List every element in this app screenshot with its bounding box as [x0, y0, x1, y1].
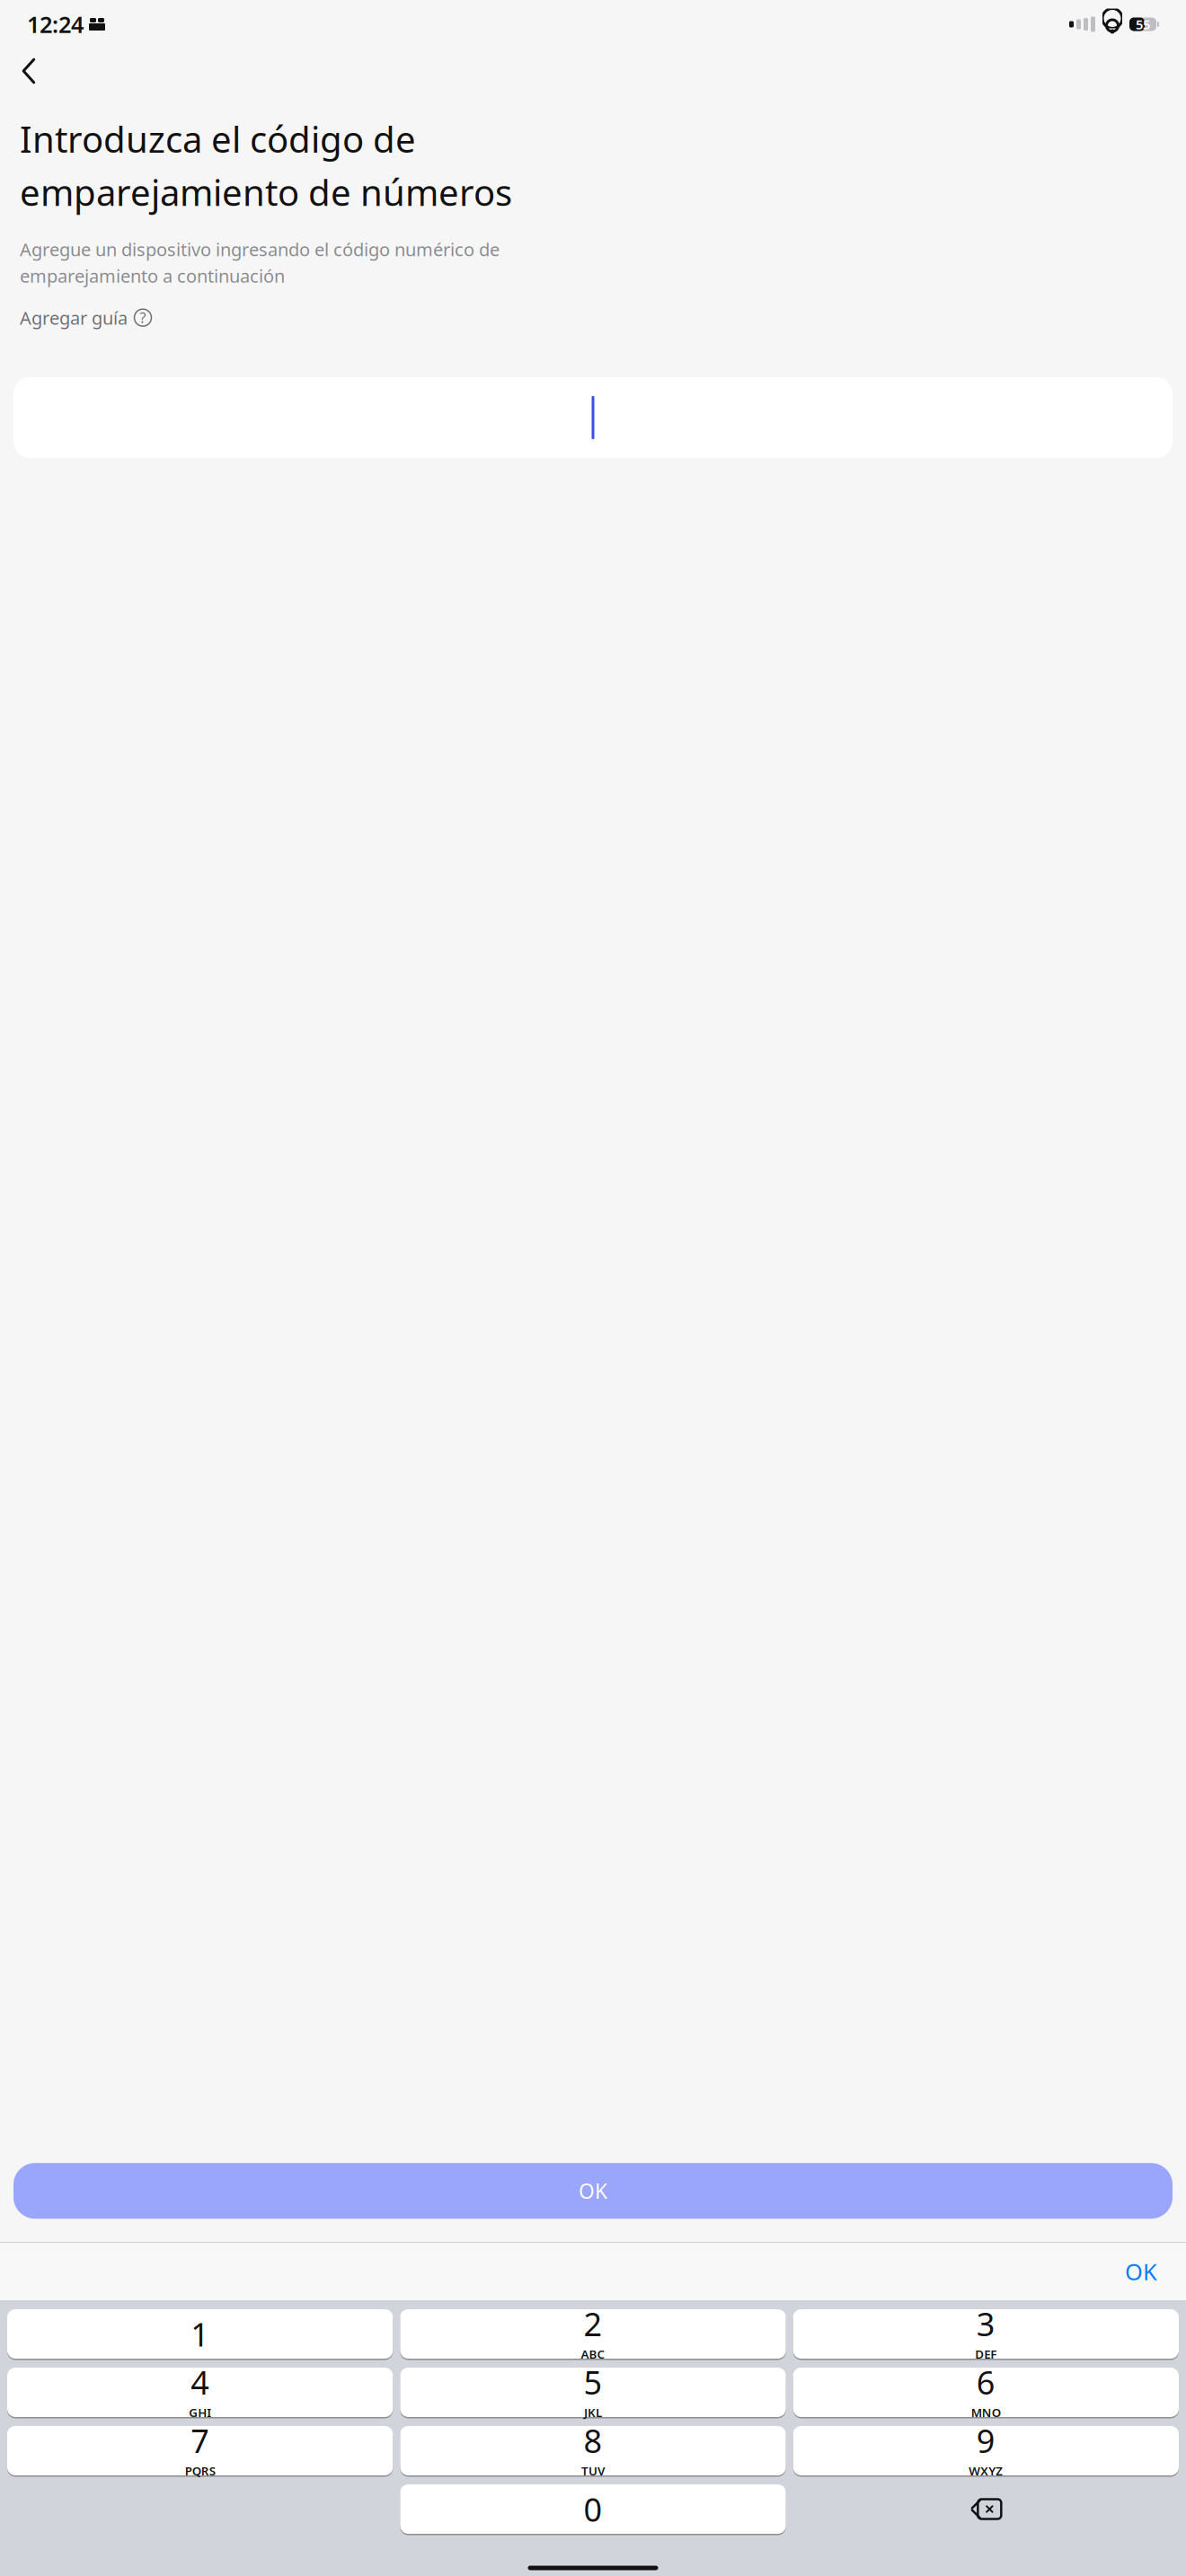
button[interactable]: 2 — [400, 2308, 786, 2360]
button[interactable]: Agregar guía — [20, 300, 152, 335]
staticText: JKL — [584, 2405, 602, 2420]
button[interactable]: 9 — [793, 2425, 1179, 2476]
button[interactable]: 3 — [793, 2308, 1179, 2360]
staticText: OK — [579, 2177, 607, 2204]
button[interactable]: 6 — [793, 2367, 1179, 2418]
staticText: GHI — [189, 2405, 211, 2420]
staticText: emparejamiento de números — [20, 168, 512, 216]
button[interactable]: 8 — [400, 2425, 786, 2476]
staticText: ABC — [581, 2346, 605, 2362]
staticText: 4 — [191, 2361, 210, 2404]
staticText: Agregue un dispositivo ingresando el cód… — [20, 237, 500, 261]
staticText: WXYZ — [969, 2463, 1003, 2479]
staticText: MNO — [971, 2405, 1001, 2420]
staticText: TUV — [581, 2463, 605, 2479]
button[interactable]: 5 — [400, 2367, 786, 2418]
staticText: 1 — [191, 2312, 210, 2355]
staticText: 12:24 — [27, 9, 84, 39]
button[interactable] — [13, 377, 1173, 458]
button[interactable]: 4 — [7, 2367, 393, 2418]
staticText: OK — [1125, 2256, 1157, 2287]
staticText: 9 — [976, 2419, 995, 2462]
button[interactable]: Back — [0, 50, 50, 92]
staticText: 2 — [584, 2302, 602, 2345]
staticText: 5 — [584, 2361, 602, 2404]
staticText: 3 — [976, 2302, 995, 2345]
button[interactable]: OK — [1109, 2246, 1173, 2297]
staticText: 0 — [584, 2488, 602, 2531]
staticText: PQRS — [185, 2463, 215, 2479]
button[interactable]: OK — [13, 2163, 1173, 2219]
button[interactable]: 7 — [7, 2425, 393, 2476]
button[interactable]: 1 — [7, 2308, 393, 2360]
staticText: 6 — [976, 2361, 995, 2404]
staticText: Introduzca el código de — [20, 115, 416, 163]
button[interactable]: Delete — [793, 2483, 1179, 2535]
staticText: Agregar guía — [20, 306, 128, 330]
staticText: 8 — [584, 2419, 602, 2462]
staticText: ? — [140, 308, 146, 327]
staticText: emparejamiento a continuación — [20, 264, 285, 288]
staticText: 55 — [1136, 16, 1150, 33]
staticText: DEF — [975, 2346, 997, 2362]
staticText: 7 — [191, 2419, 210, 2462]
button[interactable]: 0 — [400, 2483, 786, 2535]
